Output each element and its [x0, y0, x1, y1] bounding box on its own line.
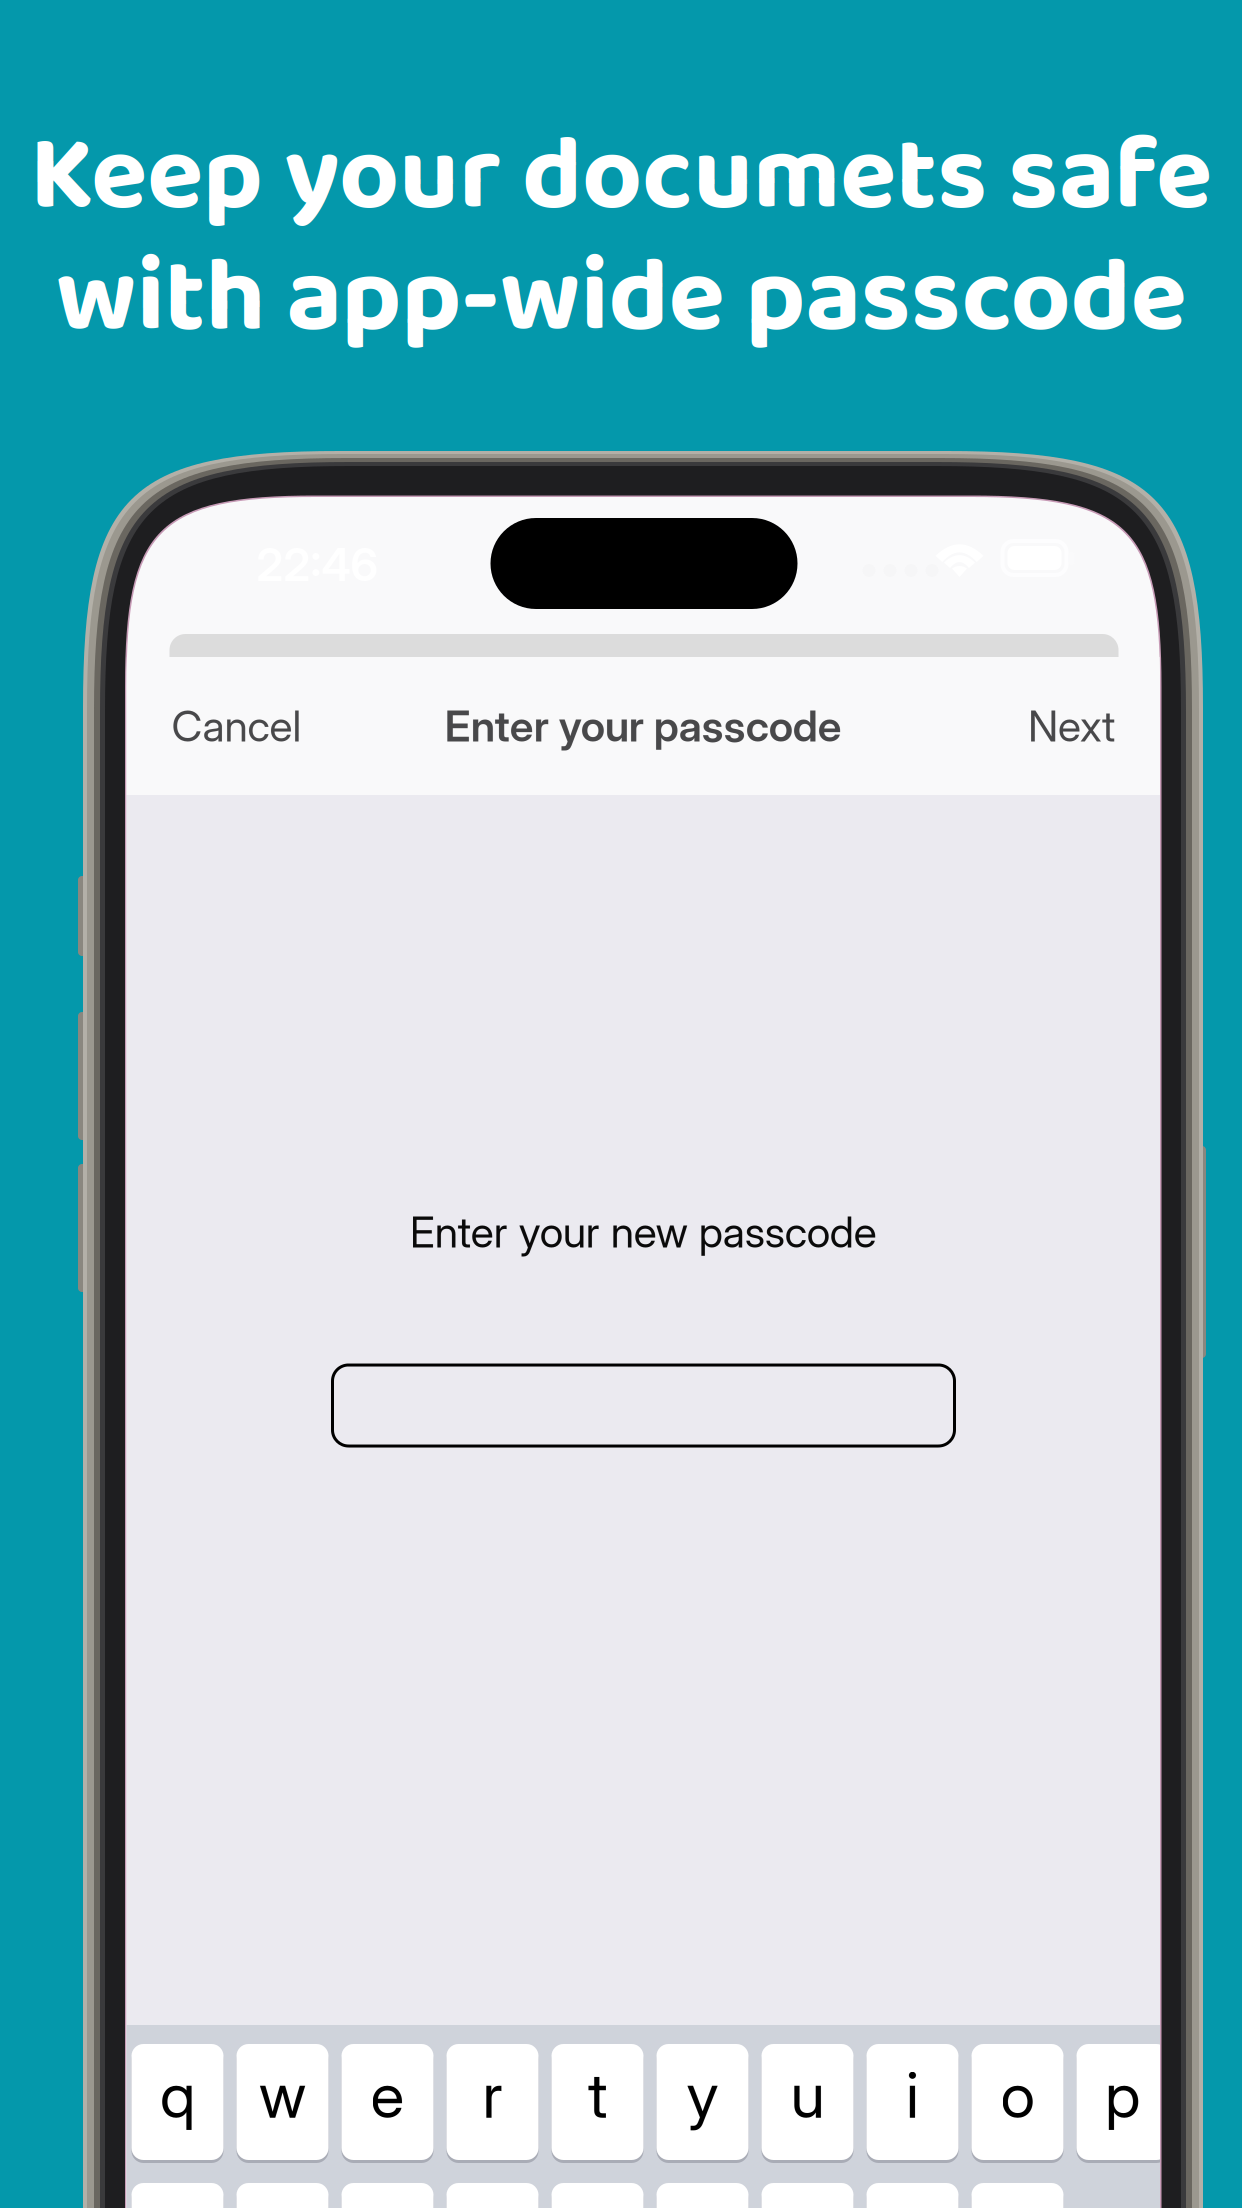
button[interactable]: u — [761, 2044, 853, 2163]
button[interactable]: a — [131, 2183, 223, 2208]
staticText: Enter your new passcode — [410, 1206, 877, 1258]
staticText: w — [259, 2057, 306, 2133]
staticText: q — [160, 2057, 195, 2133]
staticText: t — [588, 2057, 607, 2133]
button[interactable]: t — [551, 2044, 643, 2163]
staticText: with app-wide passcode — [55, 216, 1186, 382]
button[interactable]: Cancel — [171, 657, 371, 795]
button[interactable]: k — [866, 2183, 958, 2208]
button[interactable]: p — [1076, 2044, 1168, 2163]
button[interactable]: Next — [915, 657, 1115, 795]
button[interactable]: e — [341, 2044, 433, 2163]
button[interactable]: q — [131, 2044, 223, 2163]
button[interactable]: y — [656, 2044, 748, 2163]
staticText: r — [482, 2057, 502, 2133]
staticText: Keep your documets safe — [30, 94, 1212, 261]
button[interactable]: Passcode field — [332, 1365, 954, 1446]
button[interactable]: g — [551, 2183, 643, 2208]
staticText: p — [1105, 2057, 1140, 2133]
staticText: Cancel — [171, 700, 301, 752]
button[interactable]: w — [236, 2044, 328, 2163]
button[interactable]: r — [446, 2044, 538, 2163]
button[interactable]: i — [866, 2044, 958, 2163]
staticText: y — [686, 2057, 718, 2133]
button[interactable]: j — [761, 2183, 853, 2208]
button[interactable]: l — [971, 2183, 1063, 2208]
staticText: i — [906, 2057, 919, 2133]
staticText: Next — [1028, 700, 1115, 752]
button[interactable]: d — [341, 2183, 433, 2208]
button[interactable]: o — [971, 2044, 1063, 2163]
staticText: Enter your passcode — [445, 700, 842, 752]
button[interactable]: f — [446, 2183, 538, 2208]
staticText: e — [370, 2057, 404, 2133]
staticText: u — [790, 2057, 824, 2133]
button[interactable]: s — [236, 2183, 328, 2208]
button[interactable]: h — [656, 2183, 748, 2208]
staticText: o — [1000, 2057, 1034, 2133]
